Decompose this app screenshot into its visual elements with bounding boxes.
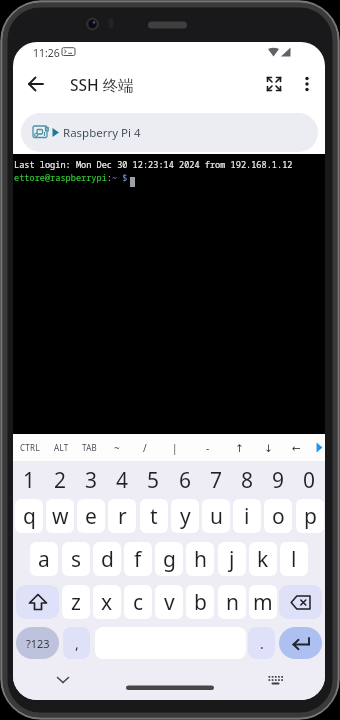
button[interactable]: ← xyxy=(282,434,310,461)
button[interactable]: h xyxy=(186,542,214,576)
staticText: 3 xyxy=(85,466,98,495)
staticText: a xyxy=(38,545,50,574)
staticText: , xyxy=(75,634,79,653)
staticText: Last login: Mon Dec 30 12:23:14 2024 fro… xyxy=(14,159,293,171)
button[interactable]: CTRL xyxy=(16,434,44,461)
staticText: w xyxy=(52,502,69,531)
staticText: k xyxy=(257,545,269,574)
staticText: . xyxy=(260,634,264,653)
staticText: 4 xyxy=(116,466,129,495)
staticText: r xyxy=(118,502,127,531)
button[interactable]: a xyxy=(30,542,58,576)
staticText: u xyxy=(210,502,223,531)
staticText: | xyxy=(172,441,178,455)
staticText: m xyxy=(253,588,273,617)
button[interactable]: u xyxy=(202,499,230,533)
button[interactable]: d xyxy=(93,542,121,576)
staticText: q xyxy=(23,502,36,531)
staticText: TAB xyxy=(82,442,98,453)
staticText: 2 xyxy=(54,466,67,495)
button[interactable]: 2 xyxy=(45,463,75,497)
button[interactable]: r xyxy=(108,499,136,533)
button[interactable]: 3 xyxy=(76,463,106,497)
button[interactable]: s xyxy=(62,542,90,576)
button[interactable]: b xyxy=(186,585,214,619)
button[interactable]: y xyxy=(171,499,199,533)
button[interactable]: c xyxy=(124,585,152,619)
staticText: h xyxy=(194,545,207,574)
button[interactable]: i xyxy=(233,499,261,533)
button[interactable] xyxy=(263,73,285,95)
button[interactable]: f xyxy=(124,542,152,576)
staticText: v xyxy=(164,588,175,617)
staticText: - xyxy=(206,441,210,455)
staticText: 11:26 xyxy=(33,46,60,60)
button[interactable]: , xyxy=(63,627,90,659)
button[interactable]: z xyxy=(62,585,90,619)
staticText: 0 xyxy=(303,466,316,495)
button[interactable]: k xyxy=(249,542,277,576)
staticText: 7 xyxy=(210,466,223,495)
staticText: 9 xyxy=(272,466,285,495)
button[interactable]: Last login: Mon Dec 30 12:23:14 2024 fro… xyxy=(13,154,325,434)
button[interactable]: - xyxy=(194,434,222,461)
button[interactable]: 6 xyxy=(170,463,200,497)
staticText: z xyxy=(71,588,81,617)
button[interactable] xyxy=(16,585,59,619)
staticText: o xyxy=(272,502,285,531)
button[interactable] xyxy=(279,585,322,619)
staticText: ← xyxy=(292,442,301,454)
button[interactable]: e xyxy=(77,499,105,533)
staticText: j xyxy=(229,545,235,574)
button[interactable]: 0 xyxy=(294,463,324,497)
button[interactable]: | xyxy=(161,434,189,461)
button[interactable]: 1 xyxy=(14,463,44,497)
button[interactable]: 5 xyxy=(138,463,168,497)
staticText: l xyxy=(291,545,297,574)
staticText: t xyxy=(150,502,158,531)
button[interactable]: ?123 xyxy=(16,627,59,659)
staticText: d xyxy=(101,545,114,574)
staticText: g xyxy=(163,545,176,574)
staticText: s xyxy=(71,545,82,574)
staticText: e xyxy=(85,502,97,531)
staticText: 6 xyxy=(179,466,192,495)
staticText: ALT xyxy=(54,442,69,453)
button[interactable] xyxy=(279,627,322,659)
staticText: x xyxy=(101,588,113,617)
button[interactable]: 4 xyxy=(107,463,137,497)
button[interactable]: l xyxy=(280,542,308,576)
button[interactable]: j xyxy=(218,542,246,576)
button[interactable]: o xyxy=(264,499,292,533)
button[interactable]: q xyxy=(15,499,43,533)
button[interactable]: . xyxy=(248,627,275,659)
button[interactable]: w xyxy=(46,499,74,533)
button[interactable]: x xyxy=(93,585,121,619)
button[interactable]: ALT xyxy=(47,434,75,461)
staticText: ?123 xyxy=(26,636,50,651)
button[interactable]: v xyxy=(155,585,183,619)
button[interactable]: n xyxy=(218,585,246,619)
button[interactable]: TAB xyxy=(76,434,104,461)
button[interactable]: / xyxy=(131,434,159,461)
button[interactable]: 8 xyxy=(232,463,262,497)
button[interactable]: t xyxy=(140,499,168,533)
staticText: ↓ xyxy=(264,442,273,454)
button[interactable]: p xyxy=(296,499,324,533)
button[interactable]: ~ xyxy=(103,434,131,461)
staticText: i xyxy=(244,502,250,531)
button[interactable]: 7 xyxy=(201,463,231,497)
button[interactable] xyxy=(296,73,318,95)
staticText: ↑ xyxy=(235,442,244,454)
button[interactable] xyxy=(22,70,50,98)
button[interactable]: ↑ xyxy=(225,434,253,461)
staticText: y xyxy=(180,502,191,531)
button[interactable]: ↓ xyxy=(254,434,282,461)
button[interactable]: m xyxy=(249,585,277,619)
button[interactable]: 9 xyxy=(263,463,293,497)
button[interactable]: g xyxy=(155,542,183,576)
staticText: / xyxy=(143,441,147,455)
staticText: p xyxy=(304,502,317,531)
button[interactable]: Raspberry Pi 4 xyxy=(21,113,318,152)
